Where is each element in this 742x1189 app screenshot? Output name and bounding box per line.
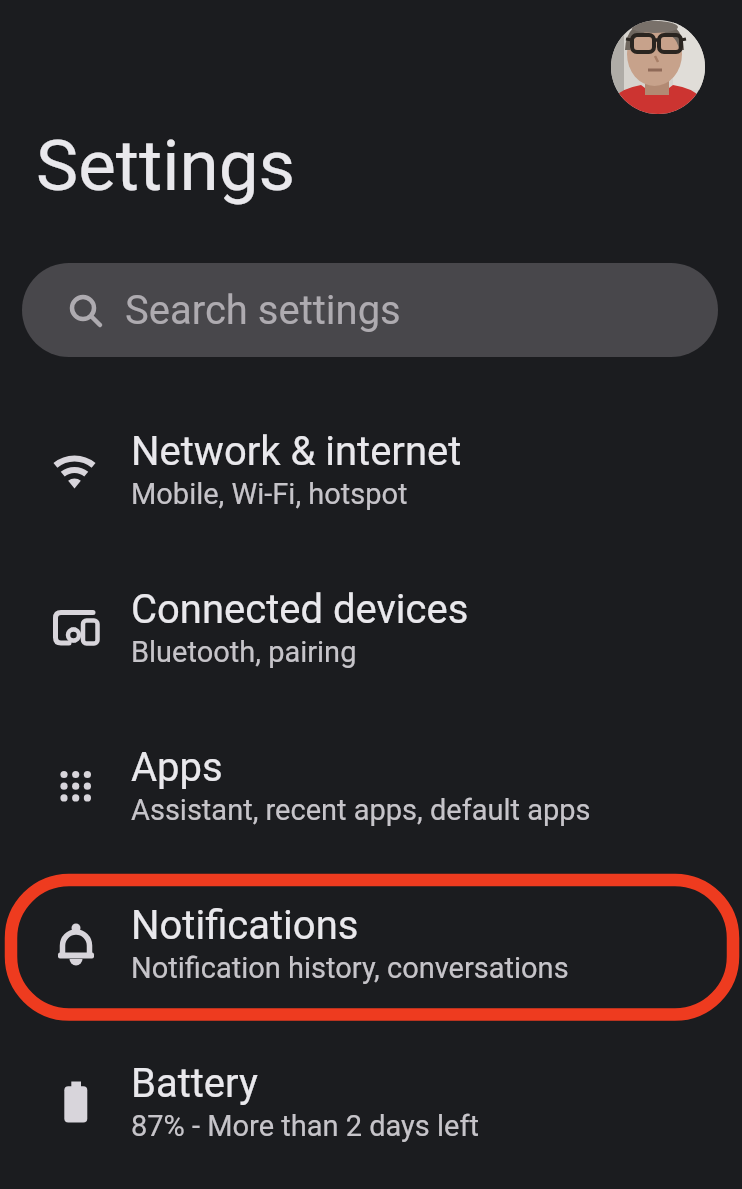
staticText: Connected devices [131, 586, 469, 633]
staticText: Mobile, Wi-Fi, hotspot [131, 477, 408, 511]
staticText: Battery [131, 1060, 258, 1107]
button[interactable] [611, 20, 705, 114]
button[interactable]: Apps [0, 713, 742, 871]
button[interactable]: Connected devices [0, 555, 742, 713]
staticText: Notifications [131, 902, 359, 949]
button[interactable]: Battery [0, 1029, 742, 1187]
staticText: Notification history, conversations [131, 951, 569, 985]
staticText: Apps [131, 744, 223, 791]
staticText: Settings [36, 124, 296, 207]
staticText: Search settings [125, 287, 401, 334]
staticText: 87% - More than 2 days left [131, 1109, 479, 1143]
staticText: Assistant, recent apps, default apps [131, 793, 591, 827]
button[interactable]: Search settings [22, 263, 718, 357]
button[interactable]: Notifications [0, 871, 742, 1029]
button[interactable]: Network & internet [0, 397, 742, 555]
staticText: Network & internet [131, 428, 462, 475]
staticText: Bluetooth, pairing [131, 635, 357, 669]
